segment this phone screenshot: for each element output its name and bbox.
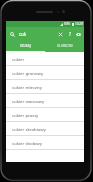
staticText: cukier mleczny	[12, 84, 42, 90]
button[interactable]: cukier słodowy	[6, 136, 84, 149]
staticText: cuk	[19, 31, 27, 37]
staticText: ULUBIONE	[57, 44, 73, 48]
staticText: cukier prosty	[12, 112, 39, 118]
button[interactable]: Show synonyms	[74, 27, 83, 41]
button[interactable]: Help	[65, 27, 74, 41]
staticText: cukier słodowy	[12, 140, 42, 146]
button[interactable]: Clear search	[56, 27, 65, 41]
button[interactable]: cukier gronowy	[6, 66, 84, 79]
button[interactable]: ULUBIONE	[45, 41, 84, 51]
staticText: 50%	[64, 22, 71, 26]
button[interactable]: cukier owocowy	[6, 94, 84, 107]
staticText: cukier skrobiowy	[12, 126, 46, 132]
staticText: cukier	[12, 56, 25, 62]
button[interactable]: cukier prosty	[6, 108, 84, 121]
button[interactable]: cukier mleczny	[6, 80, 84, 93]
button[interactable]: Search	[8, 30, 17, 39]
button[interactable]: SZUKAJ	[6, 41, 45, 51]
button[interactable]: cukier skrobiowy	[6, 122, 84, 135]
staticText: 13:28	[75, 22, 83, 26]
staticText: cukier gronowy	[12, 70, 44, 76]
staticText: ?	[69, 31, 71, 37]
staticText: SZUKAJ	[20, 44, 31, 48]
staticText: cukier owocowy	[12, 98, 45, 104]
button[interactable]: cukier	[6, 52, 84, 65]
